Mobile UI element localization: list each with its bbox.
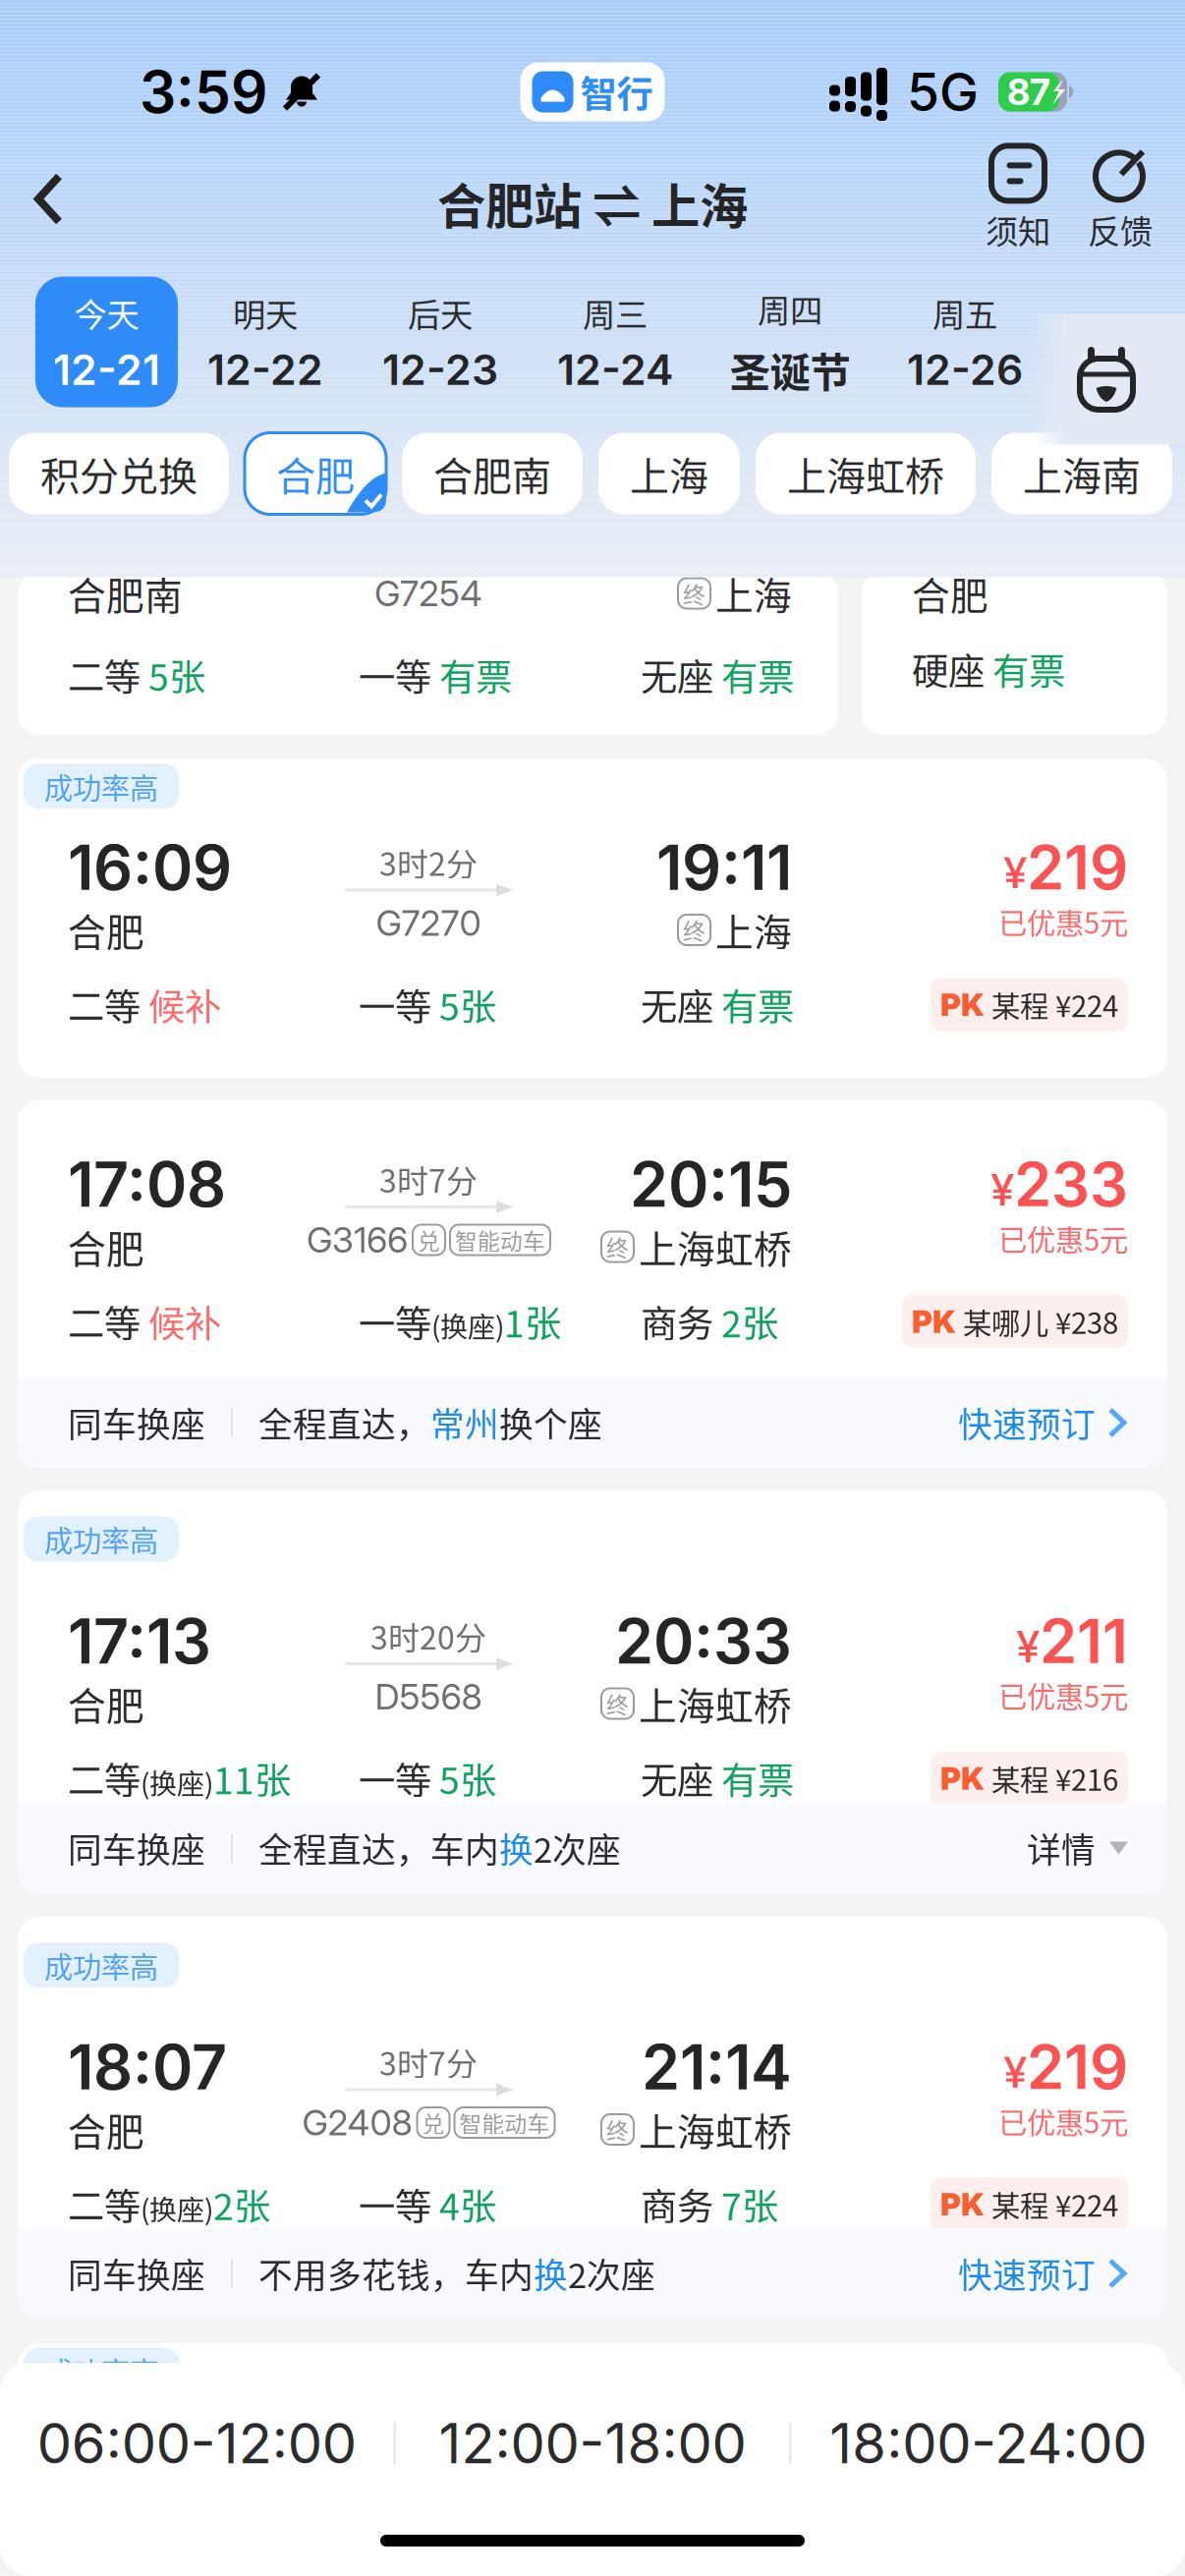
staticText: 5张 xyxy=(439,978,496,1031)
staticText: 上海虹桥 xyxy=(639,2102,792,2157)
button[interactable]: 18:00-24:00 xyxy=(791,2410,1185,2477)
staticText: 商务 xyxy=(641,2178,713,2231)
staticText: 11张 xyxy=(213,1752,291,1805)
staticText: 已优惠5元 xyxy=(998,1217,1128,1259)
button[interactable]: 反馈 xyxy=(1069,132,1171,266)
button[interactable]: 后天 xyxy=(353,277,528,407)
button[interactable]: 须知 xyxy=(967,132,1069,266)
button[interactable]: 积分兑换 xyxy=(9,433,229,514)
staticText: PK xyxy=(940,986,985,1024)
staticText: 同车换座 xyxy=(68,1398,205,1447)
staticText: 全程直达，车内 xyxy=(258,1823,499,1873)
staticText: 已优惠5元 xyxy=(998,2100,1128,2142)
staticText: 7张 xyxy=(721,2178,778,2231)
staticText: G7254 xyxy=(374,572,482,615)
staticText: 候补 xyxy=(148,1295,221,1348)
staticText: 有票 xyxy=(439,648,512,702)
button[interactable]: 成功率高 xyxy=(18,1490,1167,1893)
button[interactable]: 17:08 xyxy=(18,1100,1167,1468)
staticText: 12-23 xyxy=(382,344,498,395)
staticText: 合肥 xyxy=(68,1676,144,1731)
button[interactable]: 合肥南 xyxy=(402,433,583,514)
staticText: D5568 xyxy=(375,1675,482,1718)
staticText: 合肥 xyxy=(912,566,988,621)
staticText: ¥ xyxy=(990,1164,1014,1216)
staticText: 合肥 xyxy=(68,2102,144,2157)
button[interactable]: 成功率高 xyxy=(18,758,1167,1078)
button[interactable]: 12:00-18:00 xyxy=(396,2410,789,2477)
staticText: 终 xyxy=(683,577,705,610)
staticText: 12:00-18:00 xyxy=(439,2410,746,2477)
staticText: 合肥 xyxy=(68,902,144,957)
staticText: 同车换座 xyxy=(68,1823,205,1873)
staticText: 详情 xyxy=(1027,1823,1096,1873)
staticText: 上海南 xyxy=(1023,445,1141,502)
staticText: ¥ xyxy=(1016,1620,1040,1673)
staticText: 12-21 xyxy=(53,344,160,395)
staticText: 终 xyxy=(606,1231,629,1263)
staticText: 5G xyxy=(907,60,979,123)
staticText: 合肥南 xyxy=(68,566,183,621)
button[interactable]: 周三 xyxy=(528,277,703,407)
button[interactable]: 合肥 xyxy=(245,433,386,514)
staticText: 20:33 xyxy=(615,1604,792,1678)
staticText: PK xyxy=(940,2185,985,2223)
button[interactable]: 06:00-12:00 xyxy=(0,2410,394,2477)
button[interactable]: 同车换座 xyxy=(18,1803,1167,1893)
button[interactable]: Calendar xyxy=(1065,314,1148,445)
staticText: 二等 xyxy=(68,1752,141,1805)
staticText: 2张 xyxy=(213,2178,270,2231)
button[interactable]: 明天 xyxy=(178,277,353,407)
staticText: 终 xyxy=(606,1687,629,1720)
staticText: 3时2分 xyxy=(379,839,478,885)
staticText: 快速预订 xyxy=(958,1398,1096,1447)
staticText: 二等 xyxy=(68,648,141,702)
staticText: 兑 xyxy=(422,2106,445,2139)
button[interactable]: Back xyxy=(0,132,97,266)
staticText: 一等 xyxy=(359,648,431,702)
button[interactable]: 周四 xyxy=(703,277,877,407)
button[interactable]: 同车换座 xyxy=(18,1377,1167,1468)
staticText: 5张 xyxy=(148,648,205,702)
staticText: 智能动车 xyxy=(455,1224,545,1256)
button[interactable]: 周五 xyxy=(877,277,1052,407)
staticText: 19:11 xyxy=(656,830,792,905)
staticText: 17:13 xyxy=(68,1604,211,1678)
staticText: 反馈 xyxy=(1088,206,1153,253)
staticText: (换座) xyxy=(141,2188,213,2228)
staticText: 上海虹桥 xyxy=(639,1676,792,1731)
staticText: 积分兑换 xyxy=(40,445,197,502)
staticText: 周五 xyxy=(932,289,997,336)
button[interactable]: 同车换座 xyxy=(18,2228,1167,2319)
staticText: G7270 xyxy=(376,902,481,944)
staticText: 今天 xyxy=(74,289,139,336)
button[interactable]: 成功率高 xyxy=(18,1917,1167,2319)
staticText: 快速预订 xyxy=(958,2249,1096,2298)
button[interactable]: 今天 xyxy=(35,277,178,407)
staticText: 3:59 xyxy=(140,57,268,127)
staticText: 一等 xyxy=(359,1295,431,1348)
button[interactable]: 上海南 xyxy=(991,433,1172,514)
staticText: 21:14 xyxy=(642,2030,792,2104)
staticText: 上海虹桥 xyxy=(639,1219,792,1274)
button[interactable]: 上海 xyxy=(598,433,740,514)
staticText: 06:00-12:00 xyxy=(37,2410,356,2477)
staticText: 2次座 xyxy=(568,2249,655,2298)
staticText: 3时7分 xyxy=(379,1156,478,1202)
staticText: 一等 xyxy=(359,2178,431,2231)
staticText: 3时7分 xyxy=(379,2039,478,2084)
staticText: 合肥南 xyxy=(433,445,551,502)
staticText: 2张 xyxy=(721,1295,778,1348)
button[interactable]: 上海虹桥 xyxy=(756,433,976,514)
staticText: 2次座 xyxy=(534,1823,621,1873)
staticText: 219 xyxy=(1027,2031,1128,2104)
staticText: 某哪儿 ¥238 xyxy=(963,1301,1118,1342)
staticText: G3166 xyxy=(307,1218,408,1261)
staticText: 4张 xyxy=(439,2178,496,2231)
